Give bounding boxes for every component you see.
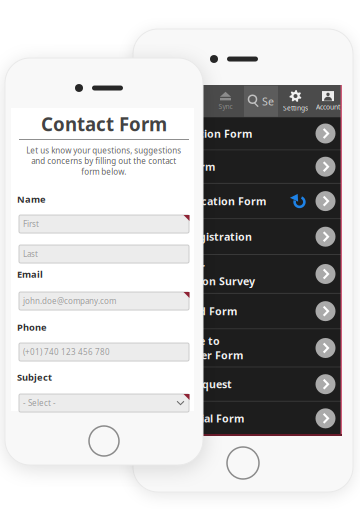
button[interactable]: Event Registration [145,219,341,254]
button[interactable]: (+01) 740 123 456 780 [19,343,189,361]
staticText: New [169,103,183,111]
staticText: Sync [218,102,232,111]
staticText: Event Registration [153,230,252,244]
button[interactable]: Order Form [145,150,341,183]
staticText: Subscription Form [153,126,252,141]
staticText: Newsletter Form [153,348,243,362]
button[interactable]: First [19,215,189,233]
staticText: - Select - [23,398,56,408]
button[interactable]: Account [313,86,343,117]
staticText: Quote Request [153,377,232,391]
staticText: Se [262,94,274,108]
staticText: First [23,219,39,229]
staticText: Last [23,249,38,259]
staticText: Order Form [153,160,215,174]
button[interactable]: Job Application Form [145,184,341,218]
staticText: Account [316,103,340,111]
staticText: Subject [17,371,52,383]
staticText: Email [17,268,43,280]
button[interactable]: Subscription Form [145,117,341,149]
staticText: john.doe@company.com [23,296,116,306]
staticText: Subscribe to [153,334,220,348]
staticText: Name [17,193,46,205]
button[interactable]: Subscribe to [145,329,341,367]
button[interactable]: Customer [145,255,341,293]
staticText: Contact Form [41,112,167,136]
staticText: Customer [153,260,205,274]
button[interactable]: - Select - [19,394,189,412]
button[interactable]: john.doe@company.com [19,292,189,310]
staticText: Download Form [153,304,237,318]
button[interactable]: Settings [278,86,313,117]
staticText: Job Application Form [153,194,266,208]
button[interactable]: Search [244,86,278,117]
staticText: Let us know your questions, suggestions … [26,145,181,177]
button[interactable]: Testimonial Form [145,402,341,435]
button[interactable]: Quote Request [145,368,341,401]
staticText: Satisfaction Survey [153,274,255,288]
button[interactable]: Download Form [145,294,341,328]
staticText: Phone [17,321,47,333]
button[interactable]: New [145,86,207,117]
staticText: Testimonial Form [153,411,244,425]
button[interactable]: Last [19,245,189,263]
staticText: Settings [283,104,308,112]
button[interactable]: Sync [207,86,244,117]
staticText: (+01) 740 123 456 780 [23,347,110,357]
